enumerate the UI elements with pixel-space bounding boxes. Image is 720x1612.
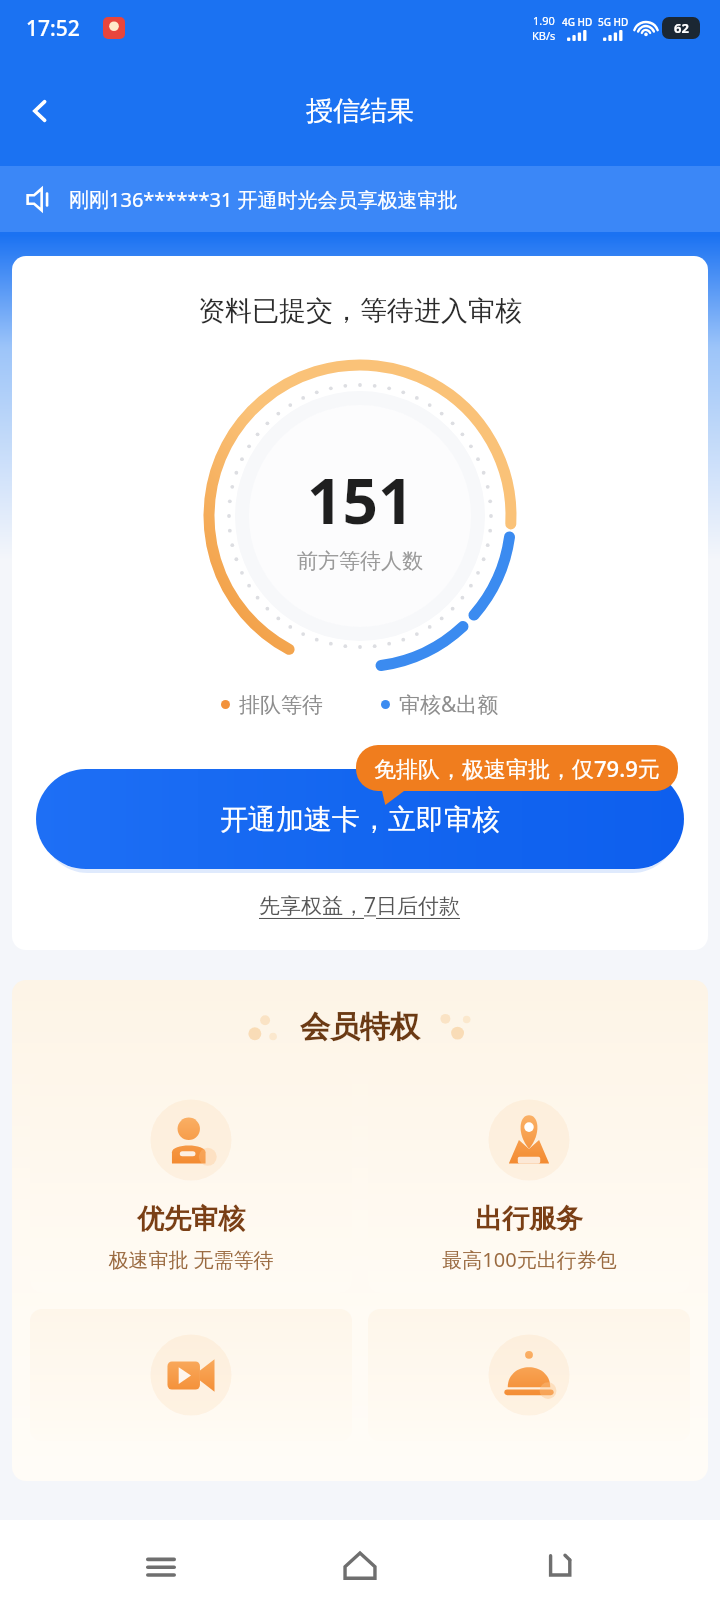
- button[interactable]: 最近任务: [123, 1528, 199, 1604]
- staticText: 排队等待: [239, 692, 323, 718]
- button[interactable]: 先享权益，7日后付款: [251, 887, 469, 924]
- button[interactable]: 刚刚136******31 开通时光会员享极速审批: [0, 166, 720, 232]
- button[interactable]: 出行服务: [368, 1074, 690, 1293]
- button[interactable]: [368, 1309, 690, 1441]
- button[interactable]: 主页: [322, 1528, 398, 1604]
- staticText: 先享权益，7日后付款: [259, 891, 461, 920]
- staticText: 151: [307, 458, 414, 542]
- staticText: 17:52: [26, 14, 80, 43]
- button[interactable]: [30, 1309, 352, 1441]
- staticText: 出行服务: [475, 1202, 583, 1236]
- button[interactable]: 返回: [521, 1528, 597, 1604]
- button[interactable]: 开通加速卡，立即审核: [36, 769, 684, 869]
- staticText: 优先审核: [137, 1202, 245, 1236]
- staticText: 最高100元出行券包: [442, 1246, 617, 1273]
- staticText: KB/s: [532, 28, 556, 43]
- staticText: 1.90: [533, 13, 555, 28]
- staticText: 5G HD: [598, 15, 629, 29]
- staticText: 审核&出额: [399, 690, 499, 719]
- button[interactable]: 返回: [12, 83, 68, 139]
- staticText: 4G HD: [562, 15, 593, 29]
- staticText: 开通加速卡，立即审核: [220, 802, 500, 837]
- staticText: 前方等待人数: [297, 548, 423, 574]
- staticText: 资料已提交，等待进入审核: [198, 294, 522, 328]
- staticText: 授信结果: [306, 94, 414, 128]
- staticText: 免排队，极速审批，仅79.9元: [374, 753, 660, 783]
- staticText: 刚刚136******31 开通时光会员享极速审批: [69, 186, 458, 213]
- staticText: 极速审批 无需等待: [108, 1246, 274, 1273]
- staticText: 会员特权: [300, 1008, 420, 1046]
- button[interactable]: 优先审核: [30, 1074, 352, 1293]
- staticText: 62: [674, 19, 689, 37]
